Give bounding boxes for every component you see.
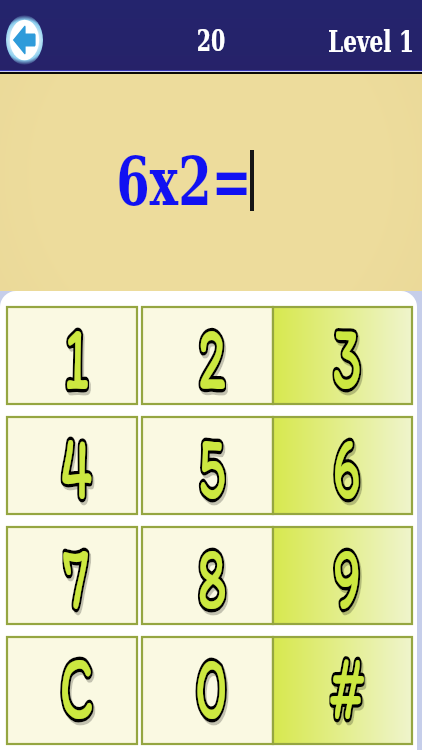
staticText: Level 1 <box>328 23 414 60</box>
staticText: 6x2= <box>116 142 252 221</box>
staticText: 6 <box>332 413 361 510</box>
staticText: 7 <box>62 523 89 620</box>
staticText: 1 <box>64 303 89 400</box>
staticText: 8 <box>197 523 227 620</box>
staticText: 9 <box>333 523 361 620</box>
staticText: 3 <box>334 306 363 403</box>
staticText: 7 <box>62 523 89 620</box>
staticText: 5 <box>200 416 228 513</box>
staticText: 6 <box>334 416 363 513</box>
staticText: 9 <box>333 523 361 620</box>
staticText: C <box>59 633 94 740</box>
staticText: 0 <box>197 636 230 743</box>
staticText: 3 <box>332 303 362 400</box>
staticText: 2 <box>198 303 226 400</box>
button[interactable]: 9 <box>273 527 412 624</box>
staticText: 3 <box>332 303 362 400</box>
button[interactable]: 1 <box>7 307 137 404</box>
staticText: # <box>329 633 365 740</box>
button[interactable]: 6 <box>273 417 412 514</box>
button[interactable]: 5 <box>142 417 273 514</box>
staticText: 0 <box>195 633 228 740</box>
staticText: 8 <box>197 523 227 620</box>
staticText: 4 <box>60 413 93 510</box>
staticText: 20 <box>197 22 225 59</box>
staticText: C <box>59 633 94 740</box>
staticText: 4 <box>62 416 94 513</box>
staticText: 6 <box>332 413 361 510</box>
staticText: 2 <box>198 303 226 400</box>
button[interactable]: 0 <box>142 637 273 744</box>
staticText: 1 <box>64 303 89 400</box>
staticText: C <box>61 636 95 743</box>
button[interactable]: # <box>273 637 412 744</box>
staticText: 5 <box>198 413 226 510</box>
button[interactable]: Back <box>6 15 43 65</box>
staticText: 8 <box>199 526 228 623</box>
staticText: 5 <box>198 413 226 510</box>
staticText: 1 <box>66 306 91 403</box>
button[interactable]: C <box>7 637 137 744</box>
staticText: 2 <box>200 306 228 403</box>
button[interactable]: 2 <box>142 307 273 404</box>
button[interactable]: 7 <box>7 527 137 624</box>
button[interactable]: 3 <box>273 307 412 404</box>
staticText: 7 <box>64 526 91 623</box>
staticText: # <box>329 633 365 740</box>
staticText: # <box>331 636 366 743</box>
staticText: 4 <box>60 413 93 510</box>
staticText: 0 <box>195 633 228 740</box>
staticText: 9 <box>335 526 363 623</box>
button[interactable]: 4 <box>7 417 137 514</box>
button[interactable]: 8 <box>142 527 273 624</box>
